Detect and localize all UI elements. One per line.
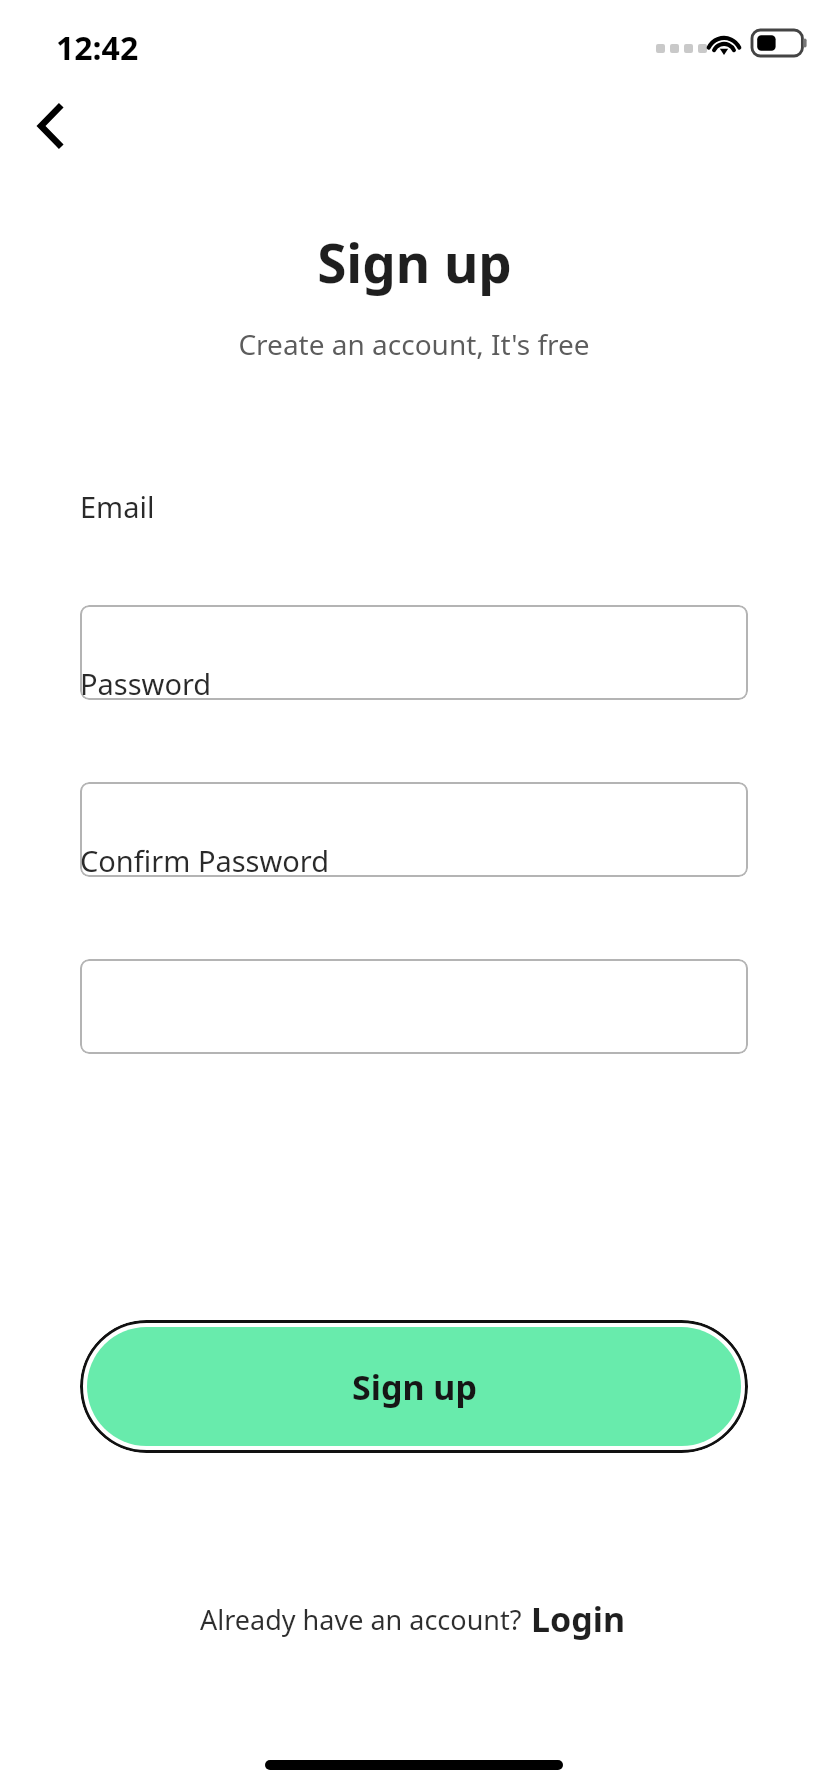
button[interactable]: Back xyxy=(14,90,86,162)
staticText: Email xyxy=(80,487,155,526)
staticText: 12:42 xyxy=(56,26,139,70)
staticText: Confirm Password xyxy=(80,841,330,880)
button[interactable] xyxy=(80,959,748,1054)
button[interactable] xyxy=(80,782,748,877)
staticText: Login xyxy=(531,1596,626,1642)
button[interactable]: Sign up xyxy=(80,1320,748,1453)
staticText: Sign up xyxy=(317,226,512,298)
staticText: Create an account, It's free xyxy=(238,325,590,363)
staticText: Already have an account? xyxy=(200,1601,529,1638)
button[interactable] xyxy=(80,605,748,700)
staticText: Password xyxy=(80,664,212,703)
staticText: Sign up xyxy=(352,1364,477,1410)
button[interactable]: Login xyxy=(529,1592,628,1646)
